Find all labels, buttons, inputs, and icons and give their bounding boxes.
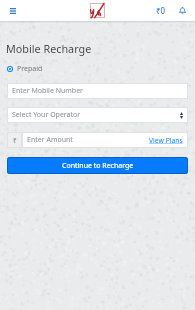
button[interactable]: Menu xyxy=(6,4,20,18)
staticText: Continue to Recharge xyxy=(62,161,134,171)
staticText: View Plans xyxy=(149,136,183,145)
staticText: Enter Mobile Number xyxy=(12,86,84,96)
button[interactable]: Prepaid xyxy=(7,63,43,75)
staticText: ₹0 xyxy=(156,5,166,16)
button[interactable]: Select Your Operator xyxy=(7,107,188,123)
button[interactable]: Continue to Recharge xyxy=(7,157,188,174)
button[interactable]: ₹0 xyxy=(154,5,168,16)
staticText: Select Your Operator xyxy=(12,110,81,120)
staticText: Prepaid xyxy=(17,64,43,74)
button[interactable]: Enter Mobile Number xyxy=(7,83,188,99)
button[interactable]: Enter Amount xyxy=(22,132,188,148)
staticText: Enter Amount xyxy=(27,135,73,145)
staticText: Mobile Recharge xyxy=(6,41,92,56)
button[interactable]: Notifications xyxy=(176,4,189,17)
button[interactable]: View Plans xyxy=(148,136,184,145)
staticText: ₹ xyxy=(13,136,17,145)
